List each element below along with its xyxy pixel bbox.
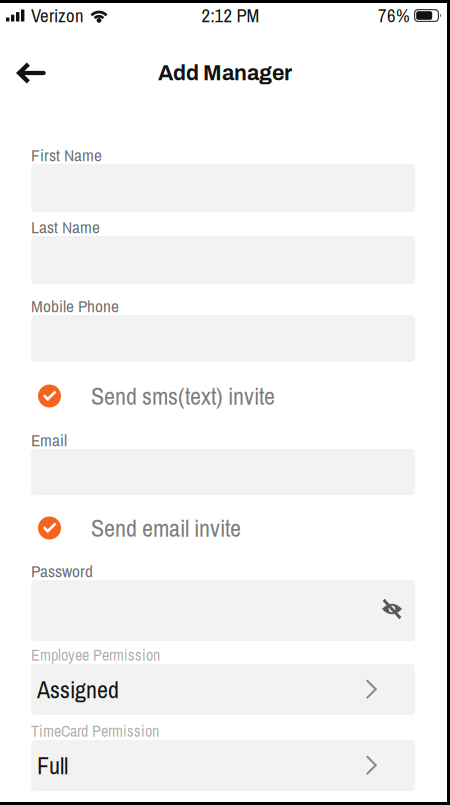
button[interactable]: Send sms(text) invite xyxy=(31,379,415,413)
staticText: Add Manager xyxy=(158,61,292,85)
button[interactable]: Show password xyxy=(381,598,415,641)
button[interactable]: Assigned xyxy=(31,664,415,715)
button[interactable]: Full xyxy=(31,740,415,791)
staticText: 2:12 PM xyxy=(201,3,259,28)
staticText: Send sms(text) invite xyxy=(91,380,275,412)
button[interactable]: Back xyxy=(0,50,64,96)
staticText: Verizon xyxy=(31,3,84,28)
staticText: Email xyxy=(31,428,67,452)
staticText: TimeCard Permission xyxy=(31,720,159,742)
button[interactable]: Send email invite xyxy=(31,511,415,545)
staticText: Send email invite xyxy=(91,512,241,544)
staticText: Mobile Phone xyxy=(31,294,119,318)
staticText: First Name xyxy=(31,143,102,167)
staticText: Employee Permission xyxy=(31,644,160,666)
staticText: 76% xyxy=(378,3,410,28)
staticText: Assigned xyxy=(37,673,119,706)
staticText: Last Name xyxy=(31,215,100,239)
staticText: Password xyxy=(31,559,93,583)
staticText: Full xyxy=(37,749,68,782)
